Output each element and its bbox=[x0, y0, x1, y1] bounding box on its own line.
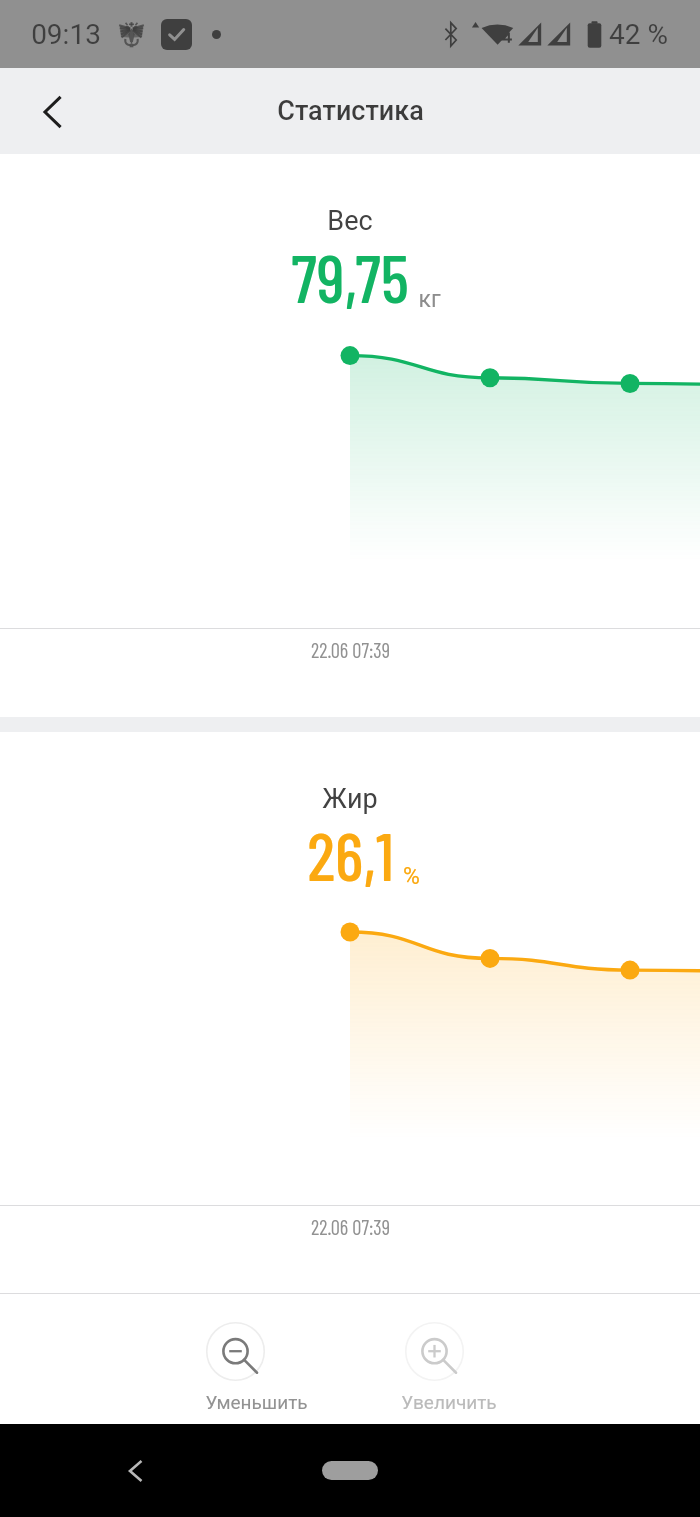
staticText: % bbox=[403, 863, 420, 890]
staticText: Вес bbox=[327, 205, 373, 237]
staticText: 22.06 07:39 bbox=[311, 637, 390, 662]
button[interactable]: Назад bbox=[110, 1446, 160, 1496]
button[interactable]: Увеличить bbox=[393, 1310, 476, 1424]
button[interactable]: Назад bbox=[23, 83, 81, 141]
button[interactable]: Главная bbox=[322, 1461, 378, 1480]
staticText: 42 % bbox=[609, 18, 668, 51]
staticText: 79,75 bbox=[291, 236, 409, 316]
staticText: 26,1 bbox=[307, 814, 394, 894]
staticText: Жир bbox=[322, 783, 378, 815]
staticText: 09:13 bbox=[31, 18, 101, 51]
staticText: кг bbox=[418, 286, 441, 313]
staticText: Статистика bbox=[277, 95, 424, 127]
staticText: Уменьшить bbox=[205, 1391, 308, 1413]
staticText: Увеличить bbox=[401, 1391, 497, 1413]
staticText: 22.06 07:39 bbox=[311, 1214, 390, 1239]
button[interactable]: Уменьшить bbox=[194, 1310, 277, 1424]
